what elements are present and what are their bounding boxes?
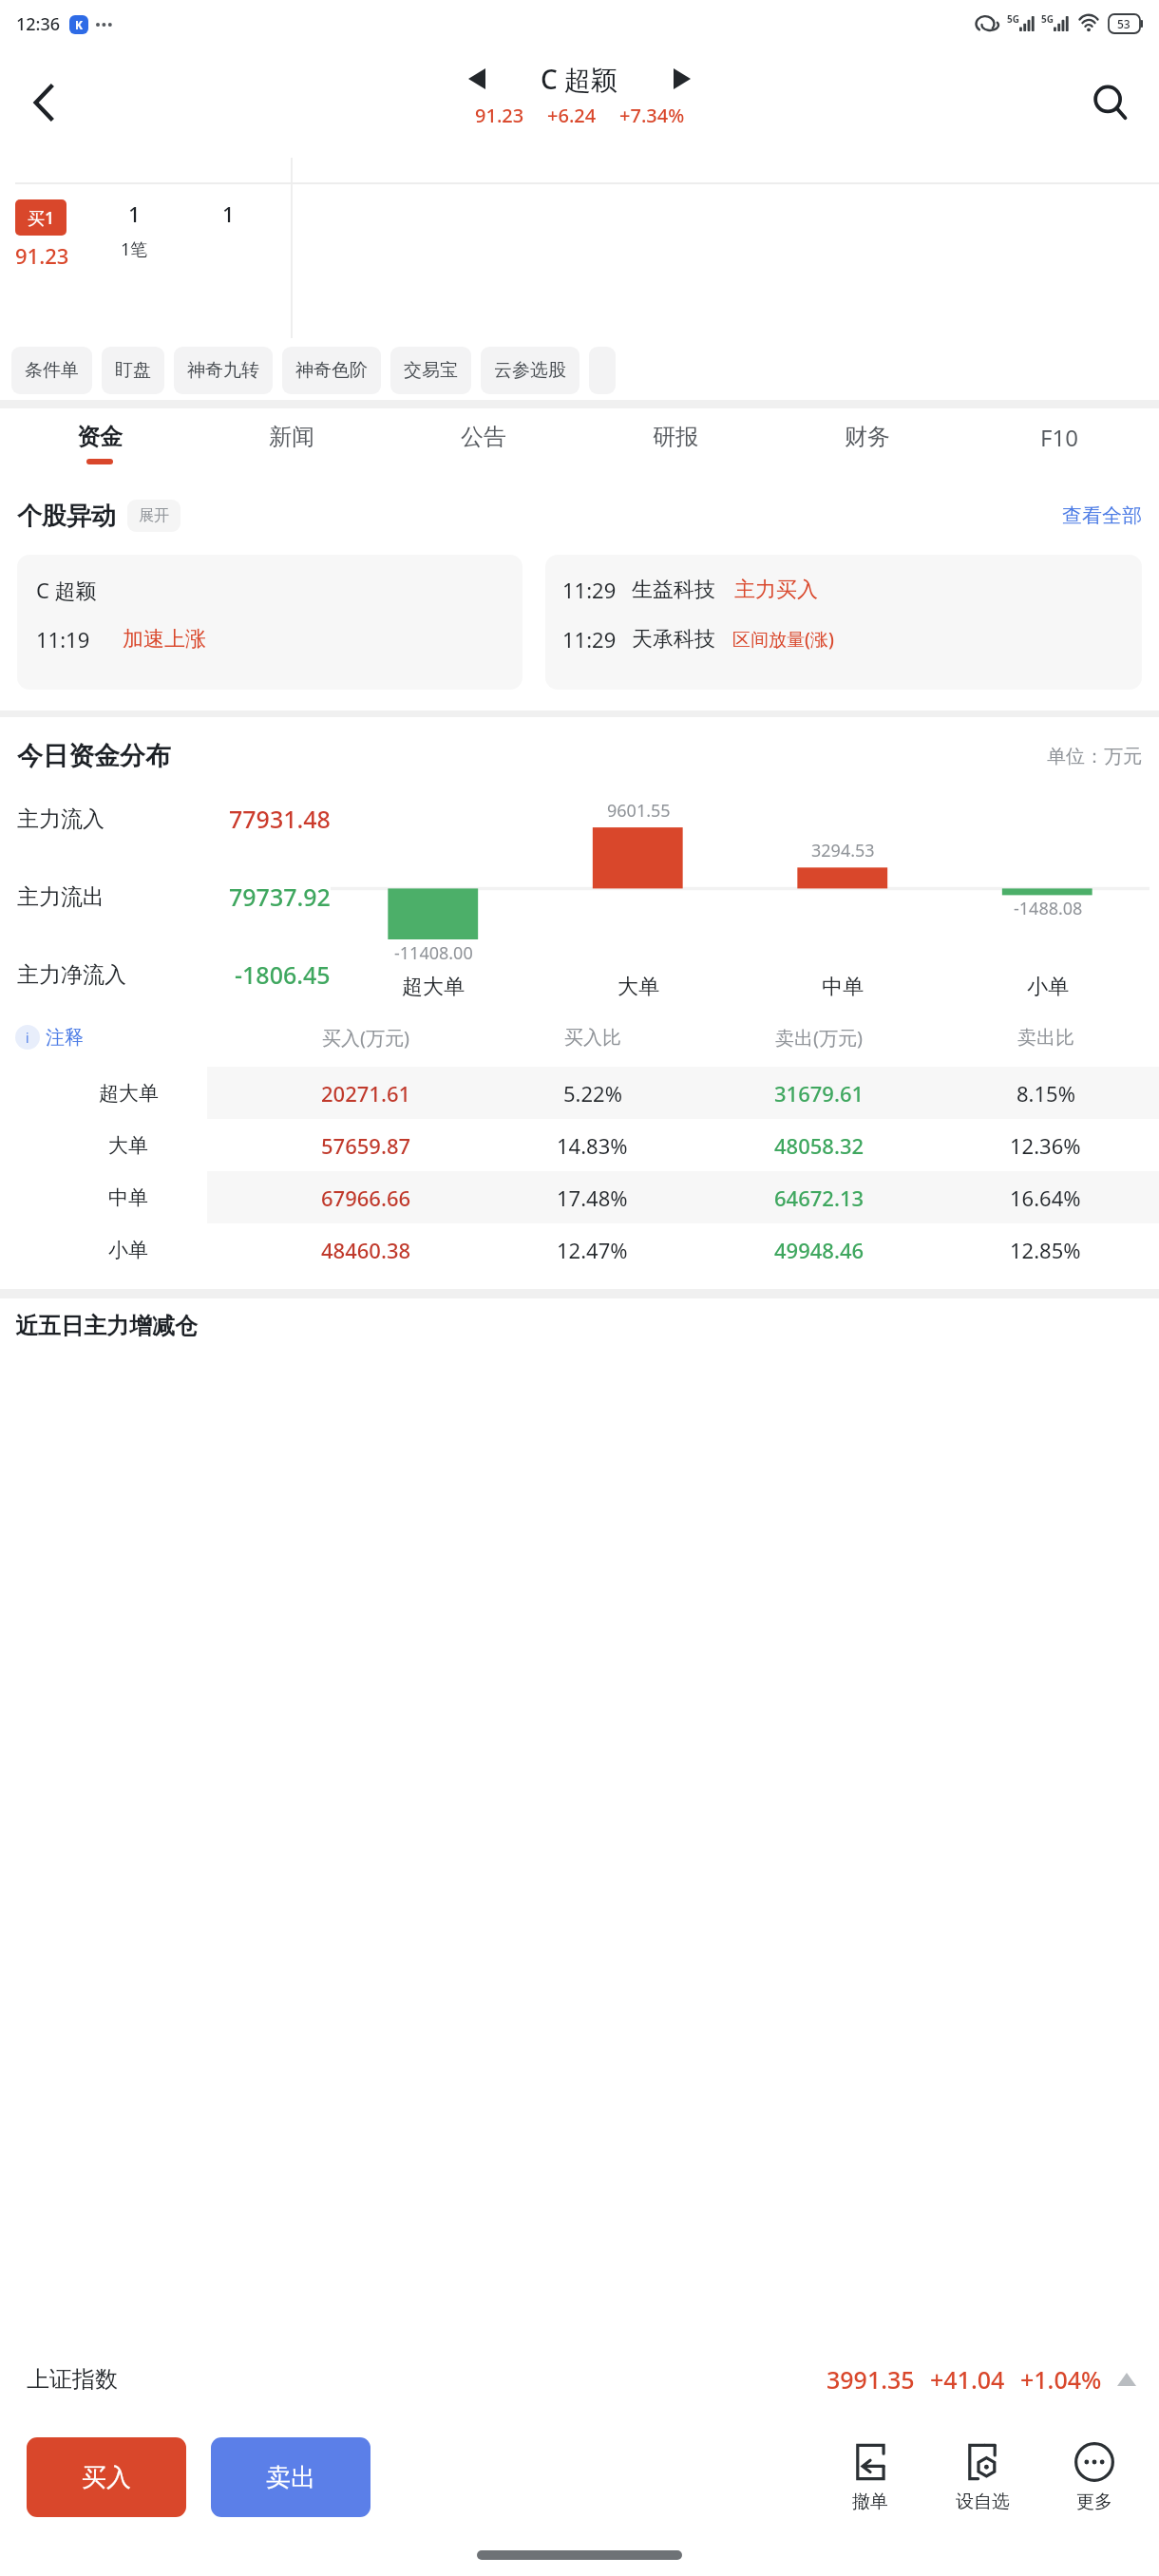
- button[interactable]: 卖出: [211, 2437, 370, 2517]
- staticText: 中单: [822, 974, 864, 1000]
- staticText: 研报: [653, 423, 698, 451]
- staticText: 77931.48: [229, 803, 331, 835]
- staticText: 买入(万元): [322, 1025, 409, 1051]
- staticText: K: [75, 17, 83, 32]
- staticText: +6.24: [547, 103, 597, 128]
- staticText: 盯盘: [115, 359, 151, 382]
- staticText: 设自选: [956, 2491, 1010, 2513]
- staticText: 11:29: [562, 576, 617, 604]
- button[interactable]: 撤单: [826, 2441, 914, 2513]
- button[interactable]: 买入: [27, 2437, 186, 2517]
- staticText: 小单: [108, 1238, 148, 1262]
- staticText: 资金: [77, 423, 123, 451]
- staticText: 49948.46: [774, 1236, 864, 1264]
- button[interactable]: 条件单: [11, 347, 92, 394]
- button[interactable]: 神奇色阶: [282, 347, 381, 394]
- button[interactable]: 公告: [388, 408, 579, 486]
- button[interactable]: 云参选股: [481, 347, 579, 394]
- staticText: 主力流入: [17, 805, 104, 833]
- staticText: 5.22%: [563, 1079, 622, 1108]
- staticText: 加速上涨: [123, 626, 206, 653]
- staticText: 买1: [28, 206, 55, 230]
- staticText: 8.15%: [1016, 1079, 1075, 1108]
- staticText: 个股异动: [17, 501, 116, 532]
- button[interactable]: 交易宝: [390, 347, 471, 394]
- staticText: 今日资金分布: [17, 740, 171, 772]
- button[interactable]: Back: [17, 76, 70, 129]
- staticText: F10: [1040, 422, 1078, 453]
- staticText: 天承科技: [632, 626, 715, 653]
- staticText: 生益科技: [632, 577, 715, 603]
- staticText: -1488.08: [1014, 897, 1083, 920]
- button[interactable]: 小单: [15, 1223, 1148, 1276]
- staticText: 小单: [1027, 974, 1069, 1000]
- button[interactable]: F10: [963, 408, 1155, 486]
- button[interactable]: Search: [1083, 75, 1138, 130]
- staticText: 主力净流入: [17, 961, 126, 989]
- button[interactable]: 上证指数: [27, 2339, 1136, 2420]
- button[interactable]: Next stock: [660, 57, 704, 101]
- staticText: 5G: [1007, 12, 1019, 26]
- staticText: 财务: [845, 423, 890, 451]
- staticText: 云参选股: [494, 359, 566, 382]
- staticText: -11408.00: [394, 941, 473, 965]
- staticText: 16.64%: [1010, 1184, 1081, 1212]
- button[interactable]: 研报: [579, 408, 771, 486]
- staticText: 20271.61: [321, 1079, 411, 1108]
- staticText: +41.04: [930, 2363, 1005, 2396]
- staticText: C 超颖: [36, 576, 97, 604]
- staticText: 12.36%: [1010, 1131, 1081, 1160]
- button[interactable]: 盯盘: [102, 347, 164, 394]
- staticText: 神奇九转: [187, 359, 259, 382]
- staticText: -1806.45: [235, 958, 331, 991]
- staticText: 新闻: [269, 423, 314, 451]
- button[interactable]: 11:29: [545, 555, 1142, 690]
- staticText: +7.34%: [619, 103, 685, 128]
- staticText: 48058.32: [774, 1131, 864, 1160]
- staticText: 神奇色阶: [295, 359, 368, 382]
- staticText: 展开: [139, 506, 169, 525]
- staticText: 5G: [1041, 12, 1054, 26]
- button[interactable]: 展开: [127, 500, 180, 532]
- button[interactable]: 查看全部: [1062, 503, 1142, 528]
- staticText: 11:19: [36, 625, 90, 653]
- button[interactable]: 新闻: [196, 408, 388, 486]
- button[interactable]: 中单: [15, 1171, 1148, 1223]
- staticText: 上证指数: [27, 2365, 118, 2394]
- staticText: 更多: [1076, 2491, 1112, 2513]
- button[interactable]: 财务: [771, 408, 963, 486]
- staticText: 卖出比: [1017, 1026, 1074, 1050]
- button[interactable]: 资金: [4, 408, 196, 486]
- staticText: 主力买入: [734, 577, 818, 603]
- button[interactable]: Previous stock: [455, 57, 499, 101]
- button[interactable]: 设自选: [939, 2441, 1026, 2513]
- staticText: 注释: [46, 1026, 84, 1050]
- button[interactable]: i: [15, 1025, 241, 1050]
- staticText: 11:29: [562, 625, 617, 653]
- staticText: 买入比: [564, 1026, 621, 1050]
- staticText: 67966.66: [321, 1184, 411, 1212]
- button[interactable]: 大单: [15, 1119, 1148, 1171]
- staticText: 撤单: [852, 2491, 888, 2513]
- staticText: 12.85%: [1010, 1236, 1081, 1264]
- staticText: 主力流出: [17, 883, 104, 911]
- staticText: 79737.92: [229, 881, 331, 913]
- button[interactable]: C 超颖: [17, 555, 522, 690]
- button[interactable]: 超大单: [15, 1067, 1148, 1119]
- button[interactable]: 神奇九转: [174, 347, 273, 394]
- staticText: 17.48%: [557, 1184, 628, 1212]
- staticText: 1: [128, 199, 141, 228]
- staticText: 91.23: [15, 241, 69, 270]
- staticText: 12:36: [16, 12, 61, 36]
- staticText: 近五日主力增减仓: [15, 1312, 198, 1340]
- staticText: 卖出(万元): [775, 1025, 863, 1051]
- staticText: 91.23: [475, 103, 524, 128]
- staticText: 53: [1117, 16, 1130, 31]
- staticText: 查看全部: [1062, 503, 1142, 528]
- button[interactable]: 更多: [1051, 2441, 1138, 2513]
- staticText: i: [26, 1029, 29, 1047]
- staticText: 区间放量(涨): [732, 627, 834, 652]
- staticText: 大单: [617, 974, 659, 1000]
- staticText: 单位：万元: [1047, 745, 1142, 768]
